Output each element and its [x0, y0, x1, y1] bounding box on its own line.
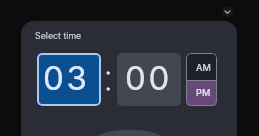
staticText: Select time	[35, 30, 82, 41]
staticText: 00	[125, 58, 172, 98]
button[interactable]: AM	[186, 53, 217, 80]
button[interactable]: PM	[186, 81, 217, 106]
button[interactable]: 03	[37, 53, 101, 106]
button[interactable]: 00	[117, 53, 181, 106]
button[interactable]: Collapse	[222, 6, 233, 17]
staticText: 03	[43, 58, 90, 98]
staticText: AM	[196, 62, 211, 73]
staticText: PM	[196, 87, 211, 98]
